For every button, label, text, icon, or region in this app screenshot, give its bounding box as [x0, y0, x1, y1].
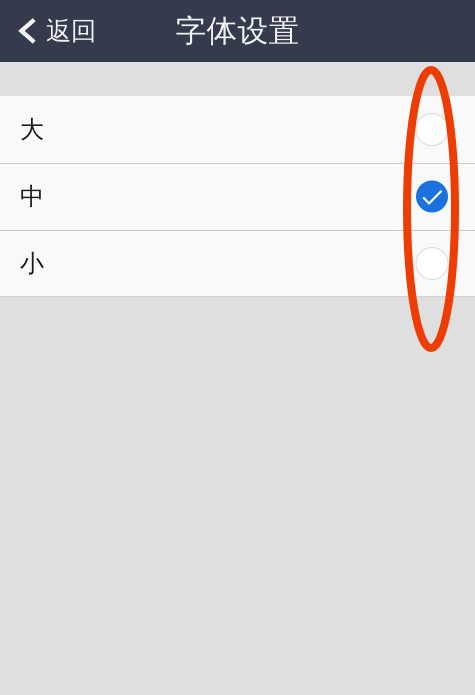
staticText: 字体设置 [175, 12, 299, 50]
button[interactable]: 小 [0, 230, 475, 297]
staticText: 中 [20, 182, 44, 211]
staticText: 返回 [46, 15, 96, 46]
button[interactable]: 返回 [0, 0, 108, 62]
button[interactable]: 大 [0, 96, 475, 163]
button[interactable]: 中 [0, 163, 475, 230]
staticText: 小 [20, 249, 44, 278]
staticText: 大 [20, 115, 44, 144]
